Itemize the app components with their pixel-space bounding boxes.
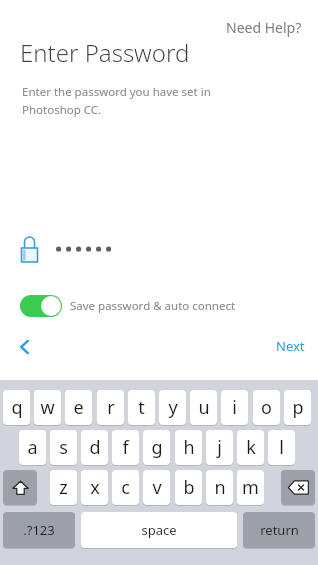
staticText: z <box>59 475 68 500</box>
staticText: d <box>89 435 101 460</box>
button[interactable] <box>20 234 200 264</box>
staticText: b <box>183 475 195 500</box>
button[interactable]: q <box>3 390 30 425</box>
button[interactable]: x <box>81 470 108 505</box>
staticText: Save password & auto connect <box>70 298 236 314</box>
staticText: e <box>73 395 84 420</box>
button[interactable]: i <box>221 390 248 425</box>
staticText: m <box>242 475 259 500</box>
button[interactable]: space <box>81 512 237 548</box>
staticText: return <box>260 521 299 539</box>
staticText: j <box>217 435 222 460</box>
staticText: t <box>138 395 145 420</box>
button[interactable]: Next <box>272 334 309 358</box>
staticText: Need Help? <box>226 18 302 37</box>
staticText: g <box>151 435 163 460</box>
staticText: c <box>121 475 130 500</box>
button[interactable]: o <box>253 390 280 425</box>
staticText: q <box>11 395 23 420</box>
button[interactable]: n <box>206 470 233 505</box>
staticText: f <box>122 435 129 460</box>
button[interactable]: a <box>19 430 46 465</box>
staticText: .?123 <box>23 521 55 539</box>
staticText: x <box>90 475 100 500</box>
staticText: space <box>141 521 177 539</box>
staticText: s <box>59 435 68 460</box>
button[interactable]: j <box>206 430 233 465</box>
button[interactable]: .?123 <box>3 512 75 548</box>
button[interactable]: m <box>237 470 264 505</box>
staticText: u <box>198 395 210 420</box>
staticText: p <box>292 395 304 420</box>
button[interactable]: z <box>50 470 77 505</box>
button[interactable]: e <box>65 390 92 425</box>
button[interactable]: h <box>175 430 202 465</box>
staticText: k <box>246 435 256 460</box>
staticText: n <box>214 475 226 500</box>
button[interactable]: Shift <box>3 470 37 505</box>
button[interactable]: return <box>243 512 315 548</box>
staticText: Next <box>276 337 305 355</box>
button[interactable]: g <box>143 430 170 465</box>
button[interactable]: Back <box>10 332 40 362</box>
button[interactable]: v <box>143 470 170 505</box>
button[interactable]: k <box>237 430 264 465</box>
button[interactable]: y <box>159 390 186 425</box>
staticText: Enter the password you have set in Photo… <box>22 84 222 117</box>
button[interactable]: w <box>34 390 61 425</box>
staticText: o <box>261 395 272 420</box>
staticText: r <box>107 395 115 420</box>
button[interactable]: u <box>190 390 217 425</box>
button[interactable]: s <box>50 430 77 465</box>
button[interactable]: Need Help? <box>222 16 306 39</box>
button[interactable]: Backspace <box>281 470 315 505</box>
staticText: w <box>40 395 55 420</box>
staticText: h <box>183 435 195 460</box>
staticText: Enter Password <box>20 36 190 69</box>
button[interactable]: c <box>112 470 139 505</box>
staticText: a <box>27 435 38 460</box>
staticText: y <box>168 395 178 420</box>
button[interactable]: r <box>97 390 124 425</box>
button[interactable]: Save password & auto connect <box>20 294 236 318</box>
button[interactable]: f <box>112 430 139 465</box>
button[interactable]: l <box>268 430 295 465</box>
button[interactable]: p <box>284 390 311 425</box>
staticText: l <box>279 435 284 460</box>
button[interactable]: t <box>128 390 155 425</box>
button[interactable]: b <box>175 470 202 505</box>
staticText: v <box>152 475 162 500</box>
button[interactable]: d <box>81 430 108 465</box>
staticText: i <box>232 395 237 420</box>
